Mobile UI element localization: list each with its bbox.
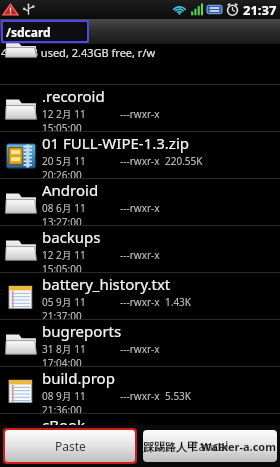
staticText: Paste: [55, 438, 86, 454]
staticText: Android: [42, 180, 99, 200]
staticText: 12 2月 11: [42, 248, 86, 262]
button[interactable]: backups: [0, 226, 280, 273]
staticText: 05 9月 11: [42, 295, 86, 309]
staticText: battery_history.txt: [42, 274, 171, 294]
staticText: 15:05:00: [42, 262, 82, 273]
staticText: 20:26:00: [42, 168, 82, 179]
staticText: ---rwxr-x: [120, 107, 160, 121]
button[interactable]: bugreports: [0, 320, 280, 367]
staticText: cBook: [42, 415, 86, 435]
staticText: ---rwxr-x: [120, 201, 160, 215]
staticText: 21:36:00: [42, 403, 82, 414]
button[interactable]: cBook: [0, 414, 280, 461]
staticText: ---rwxr-x: [120, 436, 160, 450]
button[interactable]: battery_history.txt: [0, 273, 280, 320]
staticText: 15:05:00: [42, 121, 82, 132]
staticText: 08 9月 11: [42, 389, 86, 403]
staticText: ---rwxr-x: [120, 248, 160, 262]
button[interactable]: Android: [0, 179, 280, 226]
button[interactable]: 01 FULL-WIPE-1.3.zip: [0, 132, 280, 179]
staticText: 5.53K: [165, 389, 192, 403]
staticText: ---rwxr-x: [120, 389, 160, 403]
button[interactable]: Cancel: [143, 430, 277, 462]
staticText: 24 4月 11: [42, 436, 86, 450]
staticText: 12 2月 11: [42, 107, 86, 121]
staticText: ---rwxr-x: [120, 154, 160, 168]
staticText: build.prop: [42, 368, 115, 388]
staticText: /sdcard: [6, 24, 51, 40]
staticText: 01 FULL-WIPE-1.3.zip: [42, 133, 189, 153]
button[interactable]: /sdcard: [3, 22, 87, 41]
staticText: 17:04:00: [42, 356, 82, 367]
staticText: 31 8月 11: [42, 342, 86, 356]
staticText: Cancel: [191, 438, 229, 454]
staticText: 踩踢路人甲 Walker-a.com: [143, 439, 276, 454]
staticText: 08 6月 11: [42, 201, 86, 215]
staticText: 4.97GB used, 2.43GB free, r/w: [1, 45, 156, 60]
staticText: 13:27:00: [42, 215, 82, 226]
button[interactable]: .recoroid: [0, 85, 280, 132]
staticText: 21:37: [243, 1, 277, 19]
staticText: .recoroid: [42, 86, 105, 106]
staticText: backups: [42, 227, 101, 247]
staticText: 1.43K: [165, 295, 192, 309]
button[interactable]: build.prop: [0, 367, 280, 414]
staticText: 21:37:00: [42, 309, 82, 320]
staticText: bugreports: [42, 321, 122, 341]
button[interactable]: Paste: [5, 430, 135, 462]
staticText: 220.55K: [165, 154, 203, 168]
staticText: ---rwxr-x: [120, 295, 160, 309]
button[interactable]: 19 5月 11: [0, 61, 280, 85]
staticText: ---rwxr-x: [120, 342, 160, 356]
staticText: 20 5月 11: [42, 154, 86, 168]
